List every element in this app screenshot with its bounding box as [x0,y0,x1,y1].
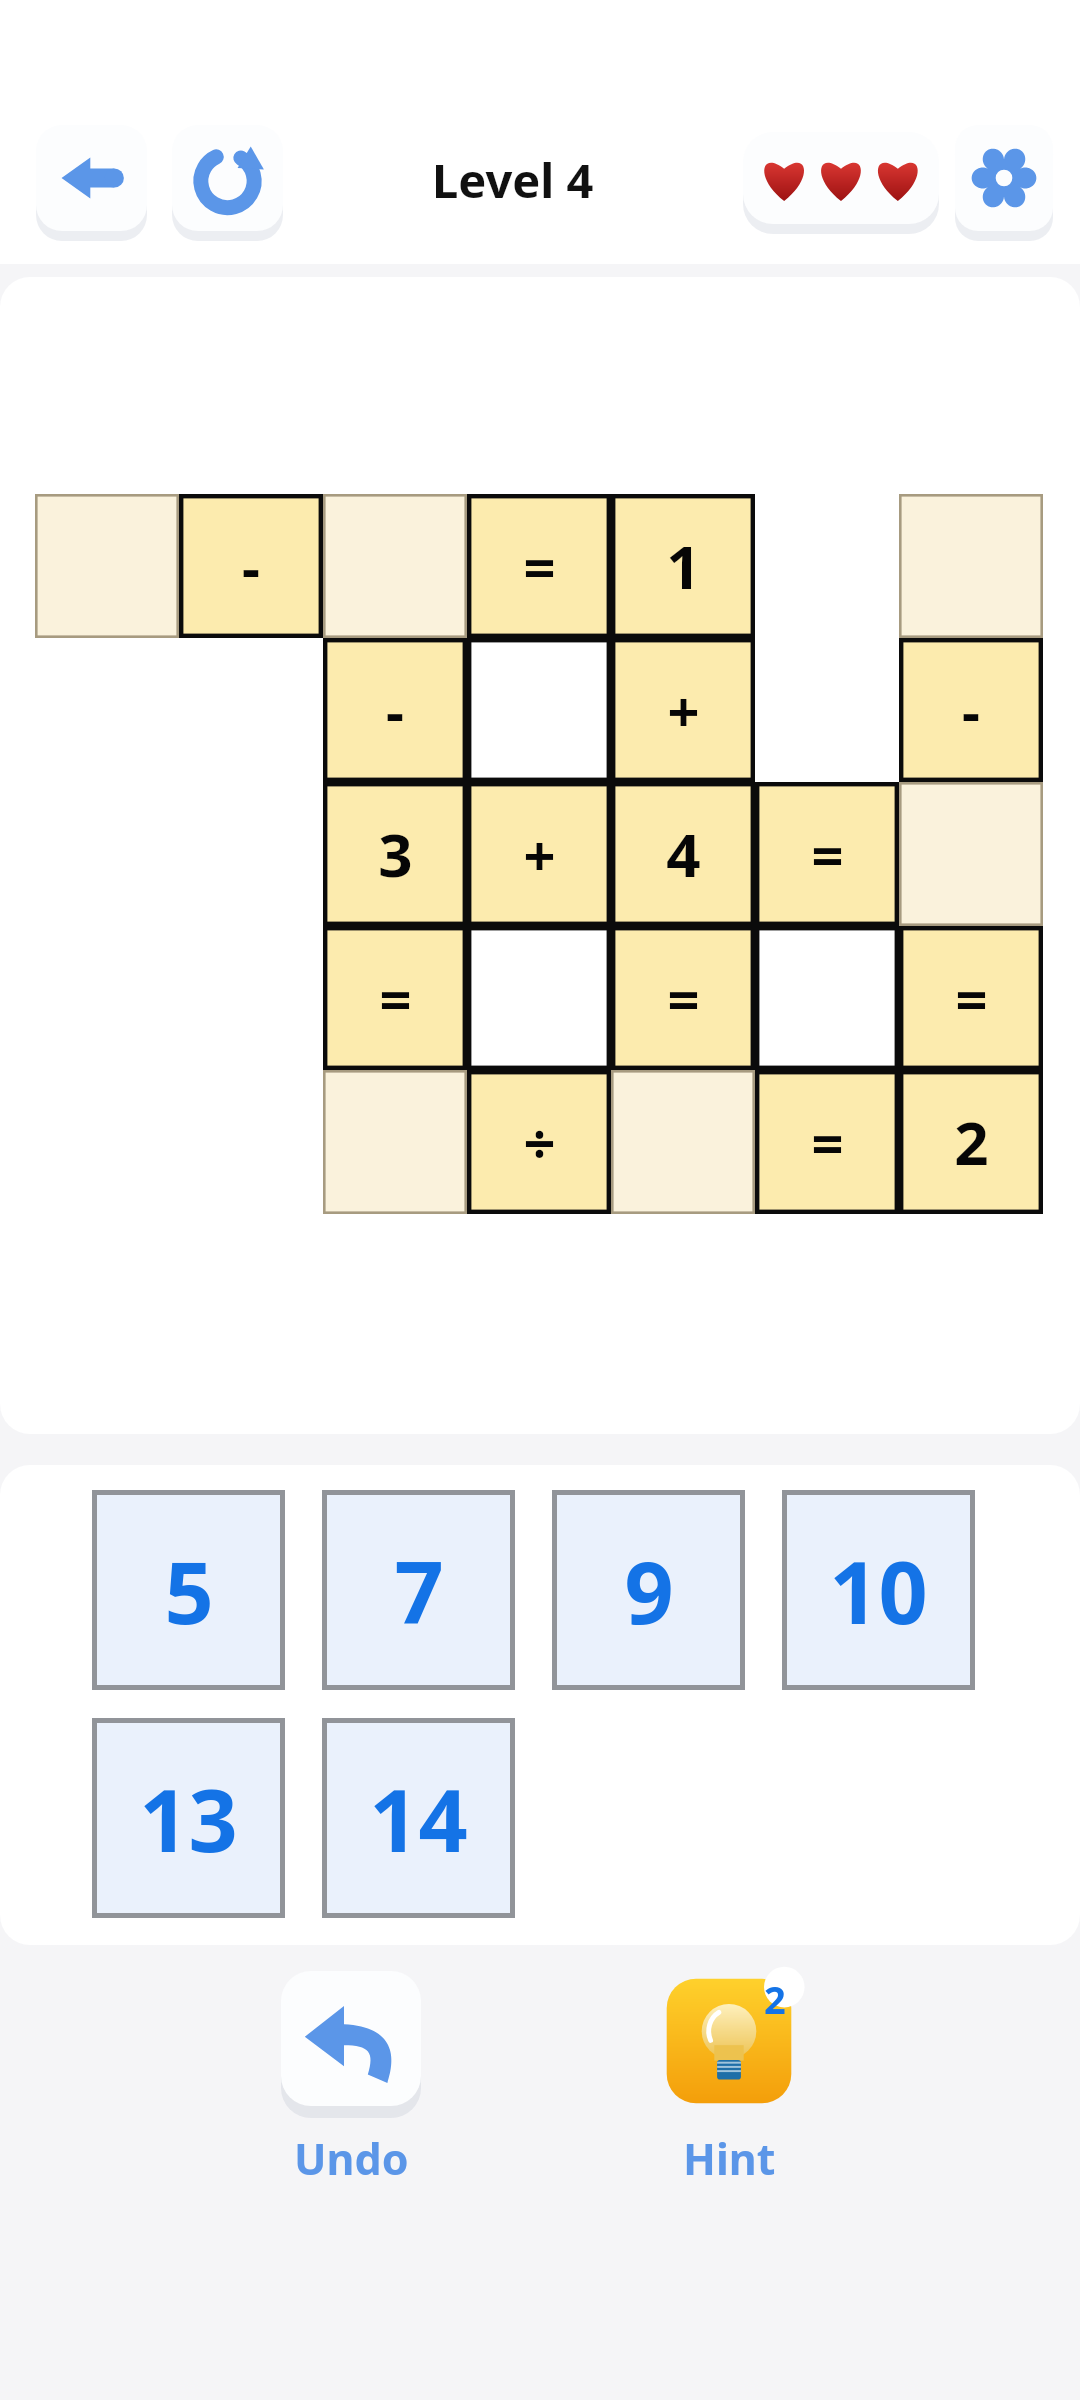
button[interactable]: Back [36,125,147,235]
button[interactable] [467,926,611,1070]
staticText: 7 [394,1532,444,1649]
button[interactable]: Undo [257,1971,445,2188]
button[interactable]: 5 [92,1490,285,1690]
button[interactable] [899,494,1043,638]
button[interactable]: 2 [635,1971,823,2188]
button[interactable]: 13 [92,1718,285,1918]
staticText: - [242,528,260,604]
button[interactable] [323,1070,467,1214]
staticText: 2 [954,1101,989,1183]
button[interactable]: - [323,638,467,782]
staticText: 4 [666,813,701,895]
staticText: 14 [369,1760,468,1877]
staticText: = [955,960,988,1036]
staticText: 3 [378,813,413,895]
staticText: - [386,672,404,748]
staticText: Undo [294,2129,409,2188]
staticText: 2 [764,1973,786,2017]
button[interactable]: = [467,494,611,638]
button[interactable] [611,1070,755,1214]
staticText: - [962,672,980,748]
staticText: = [811,816,844,892]
button[interactable]: Restart [172,125,283,235]
button[interactable]: Lives [743,132,939,228]
staticText: = [667,960,700,1036]
staticText: Hint [683,2129,776,2188]
staticText: + [523,816,556,892]
button[interactable]: 10 [782,1490,975,1690]
button[interactable]: 2 [899,1070,1043,1214]
button[interactable]: = [323,926,467,1070]
button[interactable]: ÷ [467,1070,611,1214]
staticText: 10 [829,1532,928,1649]
staticText: = [379,960,412,1036]
staticText: ÷ [523,1104,556,1180]
staticText: + [667,672,700,748]
button[interactable]: - [899,638,1043,782]
staticText: = [811,1104,844,1180]
staticText: 9 [624,1532,674,1649]
button[interactable] [35,494,179,638]
button[interactable] [755,926,899,1070]
button[interactable]: = [899,926,1043,1070]
button[interactable]: Settings [955,125,1053,235]
button[interactable]: + [611,638,755,782]
button[interactable]: 1 [611,494,755,638]
button[interactable]: = [755,782,899,926]
button[interactable]: 7 [322,1490,515,1690]
staticText: = [523,528,556,604]
button[interactable] [467,638,611,782]
staticText: 5 [164,1532,214,1649]
button[interactable]: = [755,1070,899,1214]
button[interactable] [323,494,467,638]
button[interactable] [899,782,1043,926]
button[interactable]: - [179,494,323,638]
button[interactable]: 3 [323,782,467,926]
button[interactable]: 9 [552,1490,745,1690]
button[interactable]: + [467,782,611,926]
button[interactable]: = [611,926,755,1070]
staticText: 1 [666,525,701,607]
button[interactable]: 4 [611,782,755,926]
button[interactable]: 14 [322,1718,515,1918]
staticText: 13 [139,1760,238,1877]
staticText: Level 4 [432,148,594,212]
